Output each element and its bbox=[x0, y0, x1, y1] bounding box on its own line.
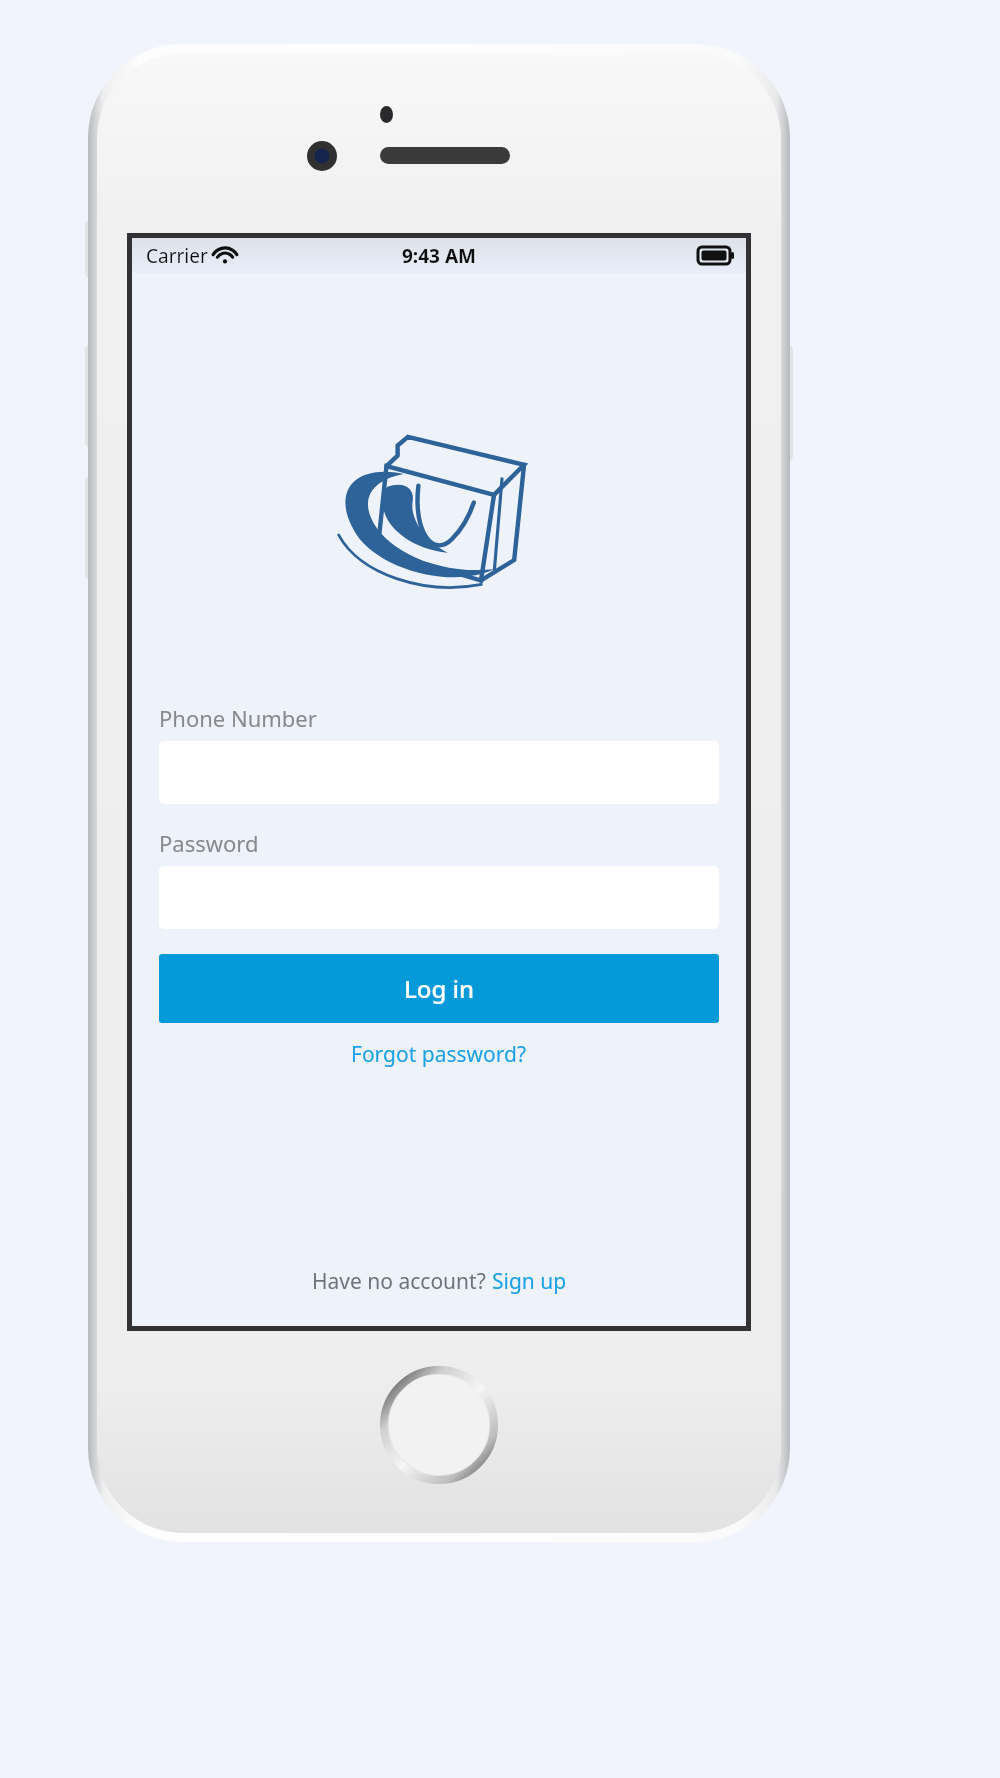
staticText: Have no account? bbox=[312, 1267, 492, 1296]
staticText: Password bbox=[159, 828, 259, 858]
button[interactable]: Forgot password? bbox=[159, 1040, 719, 1069]
staticText: Phone Number bbox=[159, 703, 317, 733]
other: App logo bbox=[334, 401, 544, 587]
staticText: Carrier bbox=[146, 243, 208, 269]
staticText: Sign up bbox=[492, 1267, 567, 1296]
staticText: Forgot password? bbox=[351, 1040, 527, 1069]
button[interactable]: Sign up bbox=[492, 1267, 567, 1296]
button[interactable]: Log in bbox=[159, 954, 719, 1023]
staticText: Log in bbox=[404, 972, 475, 1005]
staticText: 9:43 AM bbox=[402, 243, 476, 269]
